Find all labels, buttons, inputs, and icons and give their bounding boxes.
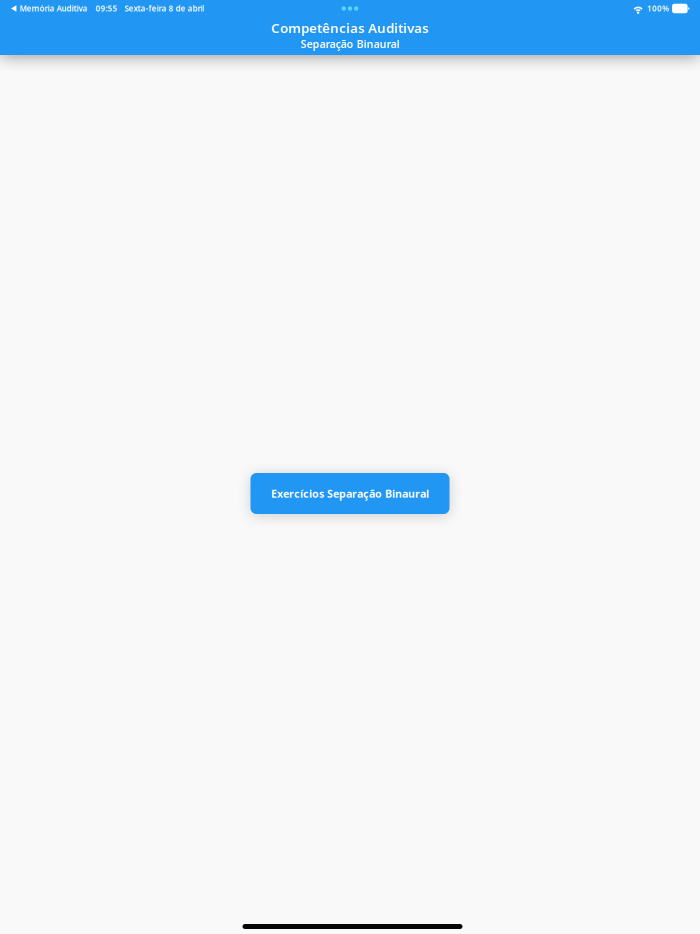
staticText: 100%: [647, 3, 669, 14]
staticText: 09:55: [95, 3, 117, 14]
button[interactable]: Memória Auditiva: [11, 3, 87, 14]
button[interactable]: Exercícios Separação Binaural: [250, 473, 449, 514]
staticText: Memória Auditiva: [19, 3, 87, 14]
staticText: Separação Binaural: [300, 37, 399, 51]
staticText: Exercícios Separação Binaural: [271, 486, 429, 501]
staticText: Competências Auditivas: [271, 19, 429, 37]
staticText: Sexta-feira 8 de abril: [124, 3, 204, 14]
